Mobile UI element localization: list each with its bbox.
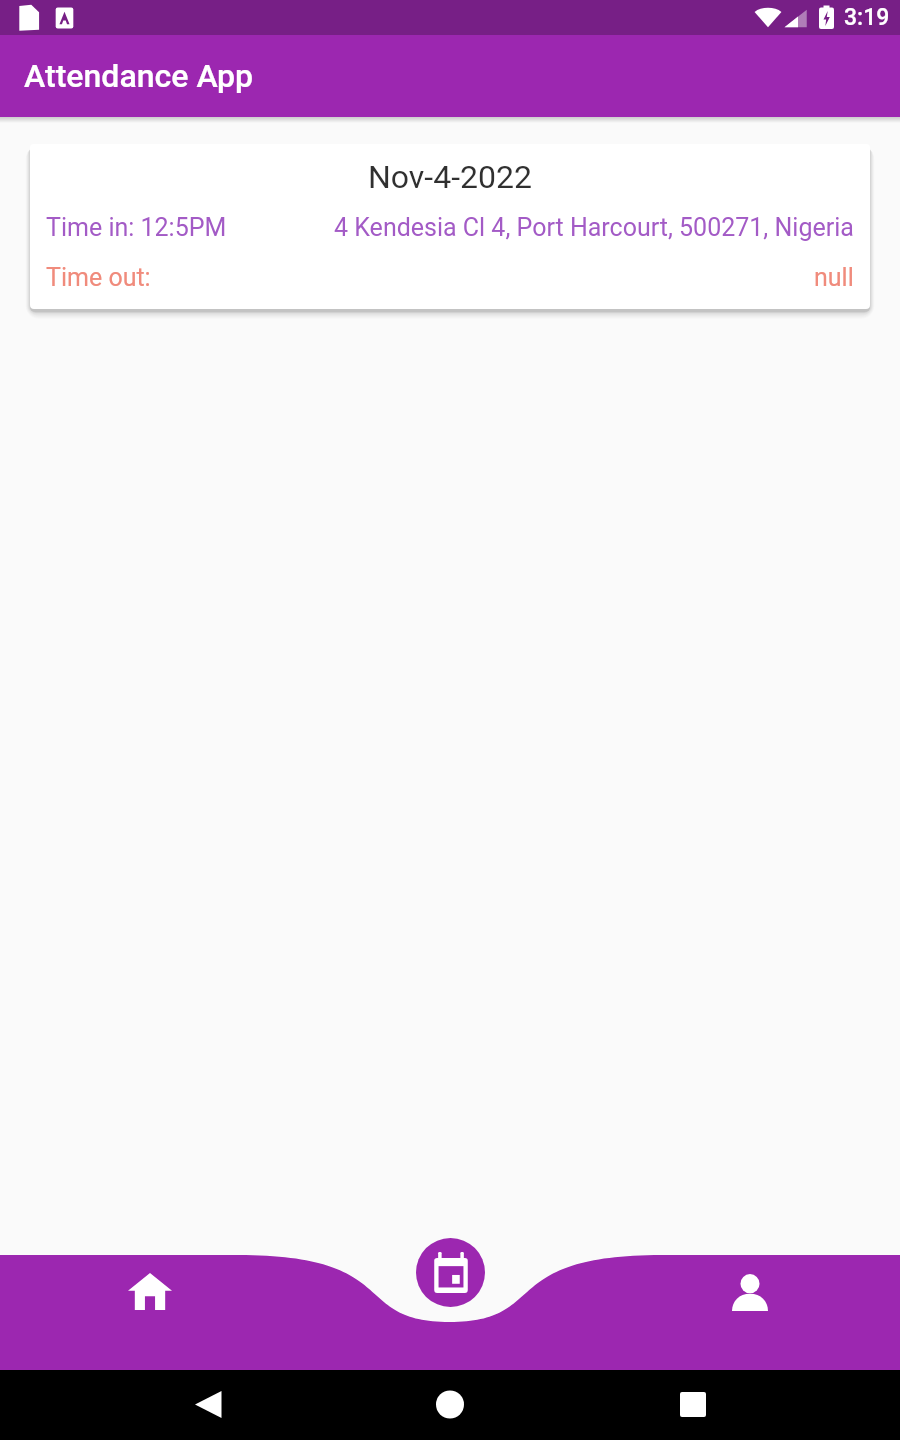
staticText: Time out: (46, 263, 151, 292)
staticText: null (814, 263, 854, 292)
staticText: Time in: 12:5PM (46, 213, 227, 242)
button[interactable]: Profile (710, 1255, 790, 1328)
staticText: Nov-4-2022 (46, 158, 854, 196)
staticText: Attendance App (24, 57, 253, 95)
button[interactable]: Open calendar (416, 1238, 485, 1307)
button[interactable]: Home (110, 1255, 190, 1328)
button[interactable]: Nov-4-2022 (30, 144, 870, 309)
staticText: 4 Kendesia Cl 4, Port Harcourt, 500271, … (334, 213, 854, 242)
staticText: 3:19 (844, 4, 890, 31)
